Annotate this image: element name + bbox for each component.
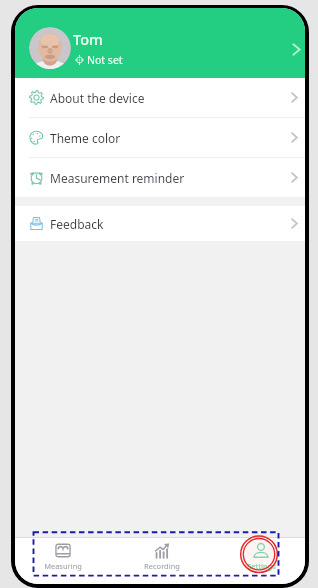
button[interactable]: Settings xyxy=(228,538,294,584)
button[interactable]: Measuring xyxy=(30,538,96,584)
button[interactable]: About the device xyxy=(15,78,305,117)
staticText: Settings xyxy=(247,561,276,571)
button[interactable]: Measurement reminder xyxy=(15,158,305,197)
staticText: Recording xyxy=(144,561,180,571)
button[interactable]: Tom xyxy=(15,8,305,78)
staticText: Measuring xyxy=(44,561,82,571)
button[interactable]: Feedback xyxy=(15,206,305,241)
staticText: Not set xyxy=(87,53,123,67)
staticText: Theme color xyxy=(50,130,121,146)
button[interactable]: Recording xyxy=(129,538,195,584)
button[interactable]: Theme color xyxy=(15,118,305,157)
staticText: Feedback xyxy=(50,216,104,232)
staticText: About the device xyxy=(50,90,145,106)
staticText: Measurement reminder xyxy=(50,170,185,186)
staticText: Tom xyxy=(73,29,103,49)
